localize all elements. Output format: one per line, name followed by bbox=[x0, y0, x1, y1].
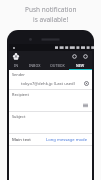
staticText: OUTBOX bbox=[50, 63, 65, 68]
button[interactable]: INBOX bbox=[23, 61, 46, 69]
button[interactable]: Settings bbox=[81, 52, 89, 60]
button[interactable]: Choose recipient bbox=[81, 101, 89, 109]
button[interactable]: Sender bbox=[9, 70, 92, 90]
button[interactable]: OUTBOX bbox=[46, 61, 69, 69]
staticText: Push notification bbox=[25, 5, 77, 14]
button[interactable]: Recipient bbox=[9, 90, 92, 112]
staticText: Subject bbox=[12, 114, 26, 119]
staticText: INBOX bbox=[29, 63, 41, 68]
button[interactable]: IN bbox=[9, 61, 23, 69]
staticText: NEW bbox=[76, 63, 85, 68]
staticText: tokyo7@dehk.jp (Last used) bbox=[21, 81, 83, 87]
staticText: Recipient bbox=[12, 92, 29, 97]
staticText: is available! bbox=[33, 15, 69, 24]
staticText: IN bbox=[14, 63, 19, 68]
button[interactable]: Refresh bbox=[70, 52, 78, 60]
button[interactable]: Subject bbox=[9, 112, 92, 134]
staticText: Main text bbox=[12, 137, 31, 143]
button[interactable]: NEW bbox=[69, 61, 92, 69]
staticText: Long message mode bbox=[46, 137, 88, 143]
button[interactable]: Clear sender bbox=[83, 80, 90, 87]
staticText: Sender bbox=[12, 72, 25, 77]
button[interactable]: Long message mode bbox=[45, 136, 89, 144]
button[interactable]: App logo bbox=[12, 52, 20, 60]
